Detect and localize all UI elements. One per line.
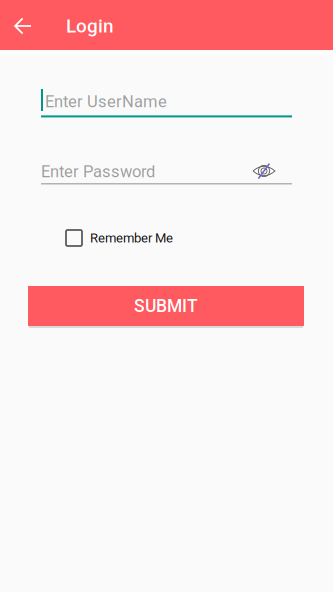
button[interactable]: Back xyxy=(0,1,46,51)
button[interactable]: Remember Me xyxy=(66,230,173,246)
button[interactable]: SUBMIT xyxy=(28,286,304,326)
staticText: Login xyxy=(66,15,114,37)
staticText: Enter Password xyxy=(41,162,155,181)
button[interactable]: Show password xyxy=(249,158,279,184)
staticText: Remember Me xyxy=(90,230,173,246)
staticText: Enter UserName xyxy=(45,92,167,111)
staticText: SUBMIT xyxy=(134,296,198,316)
